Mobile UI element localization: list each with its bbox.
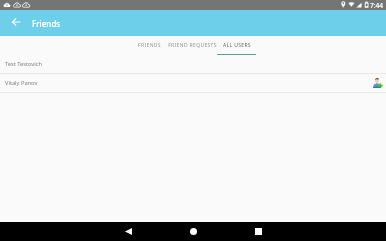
button[interactable]: Back xyxy=(118,222,138,241)
staticText: FRIEND REQUESTS xyxy=(168,42,217,49)
staticText: Vitaly Panov xyxy=(5,79,38,87)
button[interactable]: FRIENDS xyxy=(131,36,168,55)
staticText: 7:44 xyxy=(370,1,384,10)
button[interactable]: ALL USERS xyxy=(217,36,256,55)
button[interactable]: Test Testovich xyxy=(0,55,386,73)
button[interactable]: FRIEND REQUESTS xyxy=(168,36,217,55)
button[interactable]: Back xyxy=(6,14,24,32)
button[interactable]: Home xyxy=(183,222,203,241)
button[interactable]: Add friend xyxy=(370,76,384,90)
staticText: FRIENDS xyxy=(138,42,161,49)
staticText: Friends xyxy=(32,18,61,29)
staticText: ALL USERS xyxy=(223,42,251,49)
staticText: Test Testovich xyxy=(5,60,42,68)
button[interactable]: Recents xyxy=(248,222,268,241)
button[interactable]: Vitaly Panov xyxy=(0,74,386,92)
